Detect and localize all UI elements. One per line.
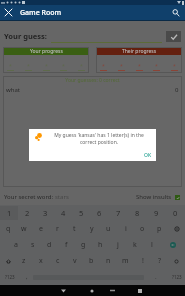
button[interactable]: Home	[82, 285, 102, 296]
button[interactable]: b	[83, 253, 100, 269]
staticText: n	[106, 256, 111, 266]
staticText: *	[173, 63, 176, 70]
button[interactable]: Recents	[130, 285, 150, 296]
staticText: My guess 'kansas' has 1 letter(s) in the…	[47, 132, 151, 146]
staticText: r	[56, 224, 59, 234]
button[interactable]: q	[0, 221, 16, 237]
button[interactable]: 2	[18, 206, 36, 220]
button[interactable]: x	[32, 253, 49, 269]
staticText: p	[157, 224, 162, 234]
staticText: 7	[116, 208, 121, 218]
staticText: s	[31, 240, 35, 250]
button[interactable]: c	[49, 253, 66, 269]
button[interactable]: Show insults	[135, 193, 181, 201]
button[interactable]: ?123	[0, 269, 20, 285]
button[interactable]: ?	[151, 253, 168, 269]
button[interactable]: 7	[109, 206, 128, 220]
button[interactable]: Enter	[160, 237, 185, 253]
button[interactable]: z	[16, 253, 32, 269]
button[interactable]: 6	[90, 206, 109, 220]
staticText: e	[39, 224, 43, 234]
button[interactable]: 1	[0, 206, 18, 220]
staticText: k	[133, 240, 137, 250]
staticText: b	[89, 256, 94, 266]
button[interactable]: Switch keyboard	[102, 285, 122, 296]
button[interactable]: Close	[0, 5, 16, 20]
button[interactable]: l	[143, 237, 160, 253]
button[interactable]: h	[92, 237, 109, 253]
button[interactable]: t	[66, 221, 83, 237]
staticText: 6	[97, 208, 102, 218]
staticText: h	[98, 240, 103, 250]
button[interactable]: k	[126, 237, 143, 253]
staticText: 2	[25, 208, 30, 218]
button[interactable]: o	[134, 221, 151, 237]
button[interactable]: Submit guess	[166, 31, 181, 42]
staticText: y	[90, 224, 94, 234]
staticText: OK	[144, 152, 152, 159]
button[interactable]: e	[32, 221, 49, 237]
button[interactable]: 0	[166, 206, 185, 220]
staticText: q	[6, 224, 11, 234]
button[interactable]: p	[151, 221, 168, 237]
button[interactable]: y	[83, 221, 100, 237]
button[interactable]: a	[7, 237, 24, 253]
staticText: *	[62, 63, 65, 70]
button[interactable]: r	[49, 221, 66, 237]
button[interactable]: j	[109, 237, 126, 253]
button[interactable]: w	[16, 221, 32, 237]
button[interactable]: Back	[53, 285, 73, 296]
staticText: l	[151, 240, 153, 250]
button[interactable]: u	[100, 221, 117, 237]
button[interactable]: Backspace	[168, 221, 185, 237]
staticText: !	[142, 256, 144, 266]
button[interactable]: n	[100, 253, 117, 269]
button[interactable]: i	[117, 221, 134, 237]
staticText: m	[122, 256, 129, 266]
button[interactable]: Search	[167, 5, 185, 20]
button[interactable]: OK	[140, 150, 156, 161]
button[interactable]: 5	[72, 206, 90, 220]
staticText: *	[120, 63, 123, 70]
button[interactable]: what	[6, 86, 179, 94]
staticText: ,	[26, 273, 28, 281]
button[interactable]: 9	[147, 206, 166, 220]
staticText: 0	[173, 208, 178, 218]
staticText: u	[106, 224, 111, 234]
staticText: f	[65, 240, 68, 250]
button[interactable]: m	[117, 253, 134, 269]
button[interactable]: d	[41, 237, 58, 253]
staticText: 9	[154, 208, 159, 218]
staticText: 3	[43, 208, 48, 218]
button[interactable]: Shift	[0, 253, 16, 269]
button[interactable]: 3	[36, 206, 54, 220]
staticText: Your guess:	[4, 31, 47, 41]
staticText: *	[155, 63, 158, 70]
staticText: ?	[158, 256, 162, 266]
button[interactable]: s	[24, 237, 41, 253]
staticText: .	[155, 273, 157, 281]
staticText: c	[56, 256, 60, 266]
staticText: *	[80, 63, 83, 70]
staticText: d	[47, 240, 52, 250]
staticText: 0	[175, 86, 179, 94]
staticText: o	[140, 224, 145, 234]
staticText: g	[81, 240, 86, 250]
staticText: Show insults	[136, 193, 172, 201]
staticText: stars	[55, 193, 69, 201]
button[interactable]: v	[66, 253, 83, 269]
button[interactable]: 4	[54, 206, 72, 220]
button[interactable]: f	[58, 237, 75, 253]
staticText: v	[73, 256, 77, 266]
staticText: w	[21, 224, 27, 234]
button[interactable]: ?123	[168, 269, 185, 285]
staticText: 8	[135, 208, 140, 218]
button[interactable]: Emoji	[168, 253, 185, 269]
button[interactable]: 8	[128, 206, 147, 220]
button[interactable]: g	[75, 237, 92, 253]
staticText: j	[117, 240, 119, 250]
